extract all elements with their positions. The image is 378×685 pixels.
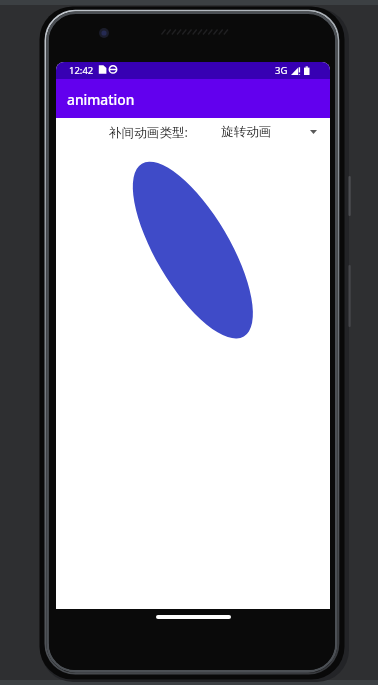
staticText: animation [67,90,135,109]
staticText: 12:42 [69,64,94,77]
staticText: 补间动画类型: [109,124,188,141]
button[interactable]: 补间动画类型 旋转动画 下拉选择 [188,118,330,146]
staticText: 3G [275,64,288,77]
staticText: 旋转动画 [221,124,272,140]
button[interactable]: animation [56,79,330,118]
